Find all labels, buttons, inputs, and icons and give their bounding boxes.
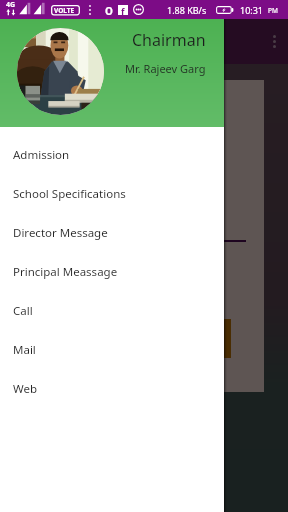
button[interactable]: Admission [0, 135, 224, 174]
button[interactable]: Principal Meassage [0, 252, 224, 291]
staticText: Web [13, 381, 38, 397]
button[interactable]: School Specifications [0, 174, 224, 213]
staticText: f [121, 5, 125, 15]
staticText: Mr. Rajeev Garg [125, 61, 206, 76]
button[interactable]: Mail [0, 330, 224, 369]
staticText: Chairman [132, 29, 206, 51]
staticText: Call [13, 303, 33, 319]
staticText: VOLTE [54, 6, 75, 15]
button[interactable]: Web [0, 369, 224, 408]
staticText: Principal Meassage [13, 264, 118, 280]
staticText: 4G [6, 0, 16, 10]
staticText: Admission [13, 147, 70, 163]
other: More options [273, 35, 276, 48]
staticText: PM [268, 6, 278, 15]
button[interactable]: Director Message [0, 213, 224, 252]
staticText: O [105, 4, 113, 15]
staticText: School Specifications [13, 186, 126, 202]
staticText: 10:31 [240, 4, 264, 16]
staticText: 1.88 KB/s [167, 4, 207, 16]
staticText: Director Message [13, 225, 108, 241]
staticText: Mail [13, 342, 36, 358]
button[interactable]: Call [0, 291, 224, 330]
